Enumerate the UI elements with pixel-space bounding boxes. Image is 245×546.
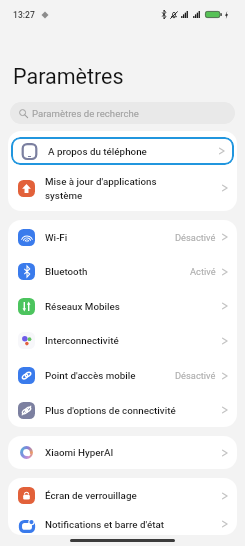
staticText: 13:27 bbox=[13, 10, 35, 20]
button[interactable]: Bluetooth bbox=[8, 254, 237, 289]
staticText: Désactivé bbox=[175, 370, 216, 381]
staticText: Réseaux Mobiles bbox=[45, 301, 222, 312]
staticText: Désactivé bbox=[175, 232, 216, 243]
button[interactable]: Xiaomi HyperAI bbox=[8, 436, 237, 469]
button[interactable]: Mise à jour d'applications système bbox=[8, 165, 237, 211]
button[interactable]: Plus d'options de connectivité bbox=[8, 393, 237, 427]
button[interactable]: Point d'accès mobile bbox=[8, 358, 237, 393]
staticText: Bluetooth bbox=[45, 266, 190, 277]
button[interactable]: A propos du téléphone bbox=[11, 137, 234, 165]
button[interactable]: Réseaux Mobiles bbox=[8, 289, 237, 323]
staticText: Wi-Fi bbox=[45, 232, 175, 243]
staticText: Notifications et barre d'état bbox=[45, 519, 222, 530]
staticText: Paramètres de recherche bbox=[32, 108, 139, 119]
button[interactable]: Paramètres de recherche bbox=[10, 102, 235, 124]
staticText: Plus d'options de connectivité bbox=[45, 405, 222, 416]
button[interactable]: Interconnectivité bbox=[8, 323, 237, 358]
staticText: Xiaomi HyperAI bbox=[45, 447, 222, 458]
staticText: A propos du téléphone bbox=[48, 146, 219, 157]
staticText: Écran de verrouillage bbox=[45, 490, 222, 501]
staticText: Interconnectivité bbox=[45, 335, 222, 346]
staticText: Point d'accès mobile bbox=[45, 370, 175, 381]
staticText: Paramètres bbox=[13, 64, 124, 89]
button[interactable]: Wi-Fi bbox=[8, 220, 237, 254]
staticText: Mise à jour d'applications système bbox=[45, 176, 222, 201]
button[interactable]: Notifications et barre d'état bbox=[8, 513, 237, 535]
staticText: Activé bbox=[190, 266, 216, 277]
button[interactable]: Écran de verrouillage bbox=[8, 478, 237, 513]
